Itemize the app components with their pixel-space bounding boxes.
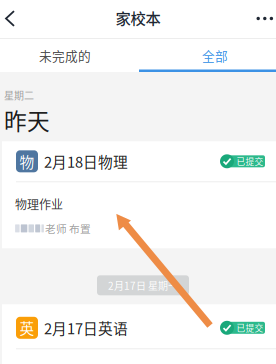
staticText: 2月17日 星期一 [108,278,178,293]
staticText: 已提交 [236,321,263,334]
staticText: 物理作业 [15,195,63,213]
button[interactable]: 未完成的 [0,39,130,72]
button[interactable]: 全部 [154,39,276,72]
staticText: 家校本 [115,6,160,29]
staticText: 全部 [202,46,228,65]
button[interactable]: More options [243,0,276,39]
staticText: 星期二 [4,88,34,102]
staticText: 英 [19,317,34,338]
staticText: 2月18日物理 [44,151,128,172]
staticText: 已提交 [236,155,263,167]
button[interactable]: 英 [2,304,276,348]
staticText: 2月17日英语 [44,317,128,338]
button[interactable]: 物 [2,141,276,181]
staticText: 昨天 [4,103,50,136]
button[interactable]: 物理作业 [2,182,276,248]
button[interactable]: Back [0,0,29,39]
staticText: 未完成的 [39,46,91,65]
staticText: 物 [19,151,34,172]
staticText: 老师 布置 [45,221,91,236]
